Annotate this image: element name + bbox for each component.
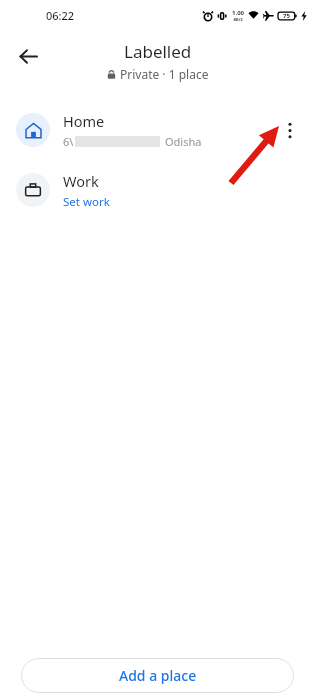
staticText: 1.00 [232, 9, 244, 17]
staticText: Labelled [124, 40, 192, 63]
button[interactable]: Home [0, 99, 315, 161]
button[interactable]: Add a place [21, 658, 294, 693]
button[interactable]: More options [271, 111, 309, 149]
button[interactable]: Work [0, 161, 315, 219]
staticText: Odisha [165, 134, 202, 149]
staticText: 6\ [63, 134, 74, 149]
staticText: Set work [63, 194, 110, 210]
button[interactable]: Back [8, 36, 48, 76]
staticText: KB/S [233, 17, 243, 22]
staticText: 75 [283, 12, 290, 20]
staticText: Work [63, 171, 99, 191]
staticText: Add a place [119, 666, 197, 685]
staticText: Home [63, 111, 105, 131]
staticText: 06:22 [46, 8, 75, 23]
staticText: Private · 1 place [120, 66, 209, 82]
